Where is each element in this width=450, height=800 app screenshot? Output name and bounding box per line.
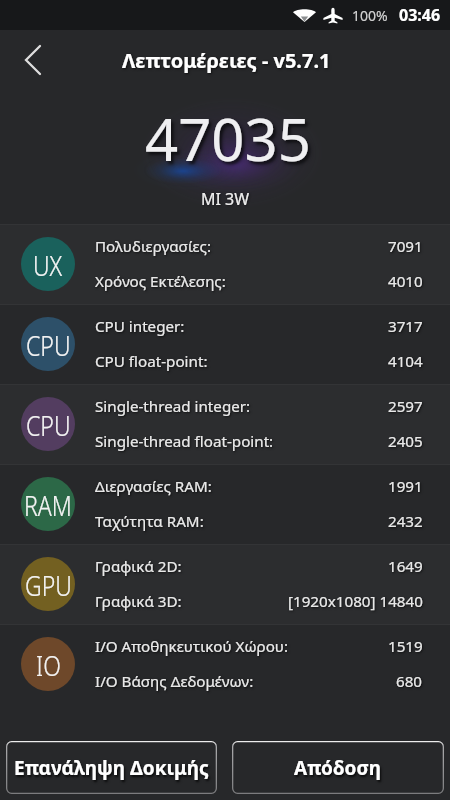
button[interactable]: Back xyxy=(9,36,57,84)
staticText: CPU xyxy=(26,326,71,363)
staticText: 4010 xyxy=(388,271,423,292)
staticText: UX xyxy=(33,246,63,283)
staticText: 7091 xyxy=(388,236,423,257)
staticText: Γραφικά 3D: xyxy=(95,591,182,612)
staticText: GPU xyxy=(25,566,72,603)
staticText: 680 xyxy=(396,671,423,692)
staticText: 47035 xyxy=(145,99,311,178)
staticText: 1519 xyxy=(388,636,423,657)
staticText: Single-thread float-point: xyxy=(95,431,274,452)
staticText: 2597 xyxy=(388,396,423,417)
button[interactable]: CPU xyxy=(0,384,450,464)
staticText: CPU float-point: xyxy=(95,351,208,372)
button[interactable]: GPU xyxy=(0,544,450,624)
staticText: CPU integer: xyxy=(95,316,185,337)
staticText: Απόδοση xyxy=(294,755,382,781)
staticText: Διεργασίες RAM: xyxy=(95,476,212,497)
button[interactable]: Επανάληψη Δοκιμής xyxy=(6,741,217,794)
staticText: Ταχύτητα RAM: xyxy=(95,511,204,532)
staticText: Single-thread integer: xyxy=(95,396,251,417)
staticText: Γραφικά 2D: xyxy=(95,556,182,577)
staticText: IO xyxy=(36,646,61,683)
staticText: 4104 xyxy=(388,351,423,372)
staticText: I/O Βάσης Δεδομένων: xyxy=(95,671,254,692)
staticText: 100% xyxy=(352,6,388,25)
staticText: Χρόνος Εκτέλεσης: xyxy=(95,271,226,292)
button[interactable]: IO xyxy=(0,624,450,704)
staticText: [1920x1080] 14840 xyxy=(288,591,423,612)
staticText: Λεπτομέρειες - v5.7.1 xyxy=(122,47,331,74)
staticText: 3717 xyxy=(388,316,423,337)
staticText: RAM xyxy=(24,486,72,523)
button[interactable]: UX xyxy=(0,224,450,304)
staticText: 1649 xyxy=(388,556,423,577)
button[interactable]: CPU xyxy=(0,304,450,384)
staticText: 2432 xyxy=(388,511,423,532)
staticText: MI 3W xyxy=(201,188,250,210)
button[interactable]: RAM xyxy=(0,464,450,544)
staticText: CPU xyxy=(26,406,71,443)
staticText: I/O Αποθηκευτικού Χώρου: xyxy=(95,636,289,657)
staticText: 03:46 xyxy=(399,4,441,26)
button[interactable]: Απόδοση xyxy=(232,741,444,794)
staticText: 1991 xyxy=(388,476,423,497)
staticText: Πολυδιεργασίες: xyxy=(95,236,212,257)
staticText: 2405 xyxy=(388,431,423,452)
staticText: Επανάληψη Δοκιμής xyxy=(14,755,209,781)
